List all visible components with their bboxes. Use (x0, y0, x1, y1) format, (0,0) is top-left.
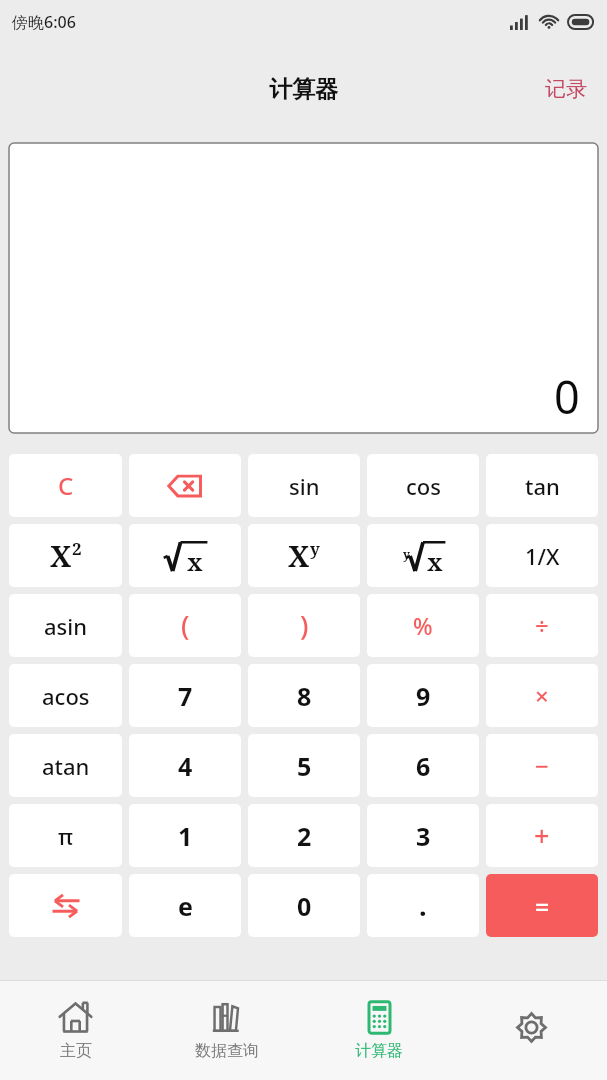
button[interactable]: asin (9, 594, 122, 657)
staticText: 记录 (545, 76, 587, 102)
staticText: % (413, 610, 433, 641)
staticText: x (427, 545, 443, 574)
staticText: acos (42, 681, 90, 711)
staticText: cos (406, 471, 441, 501)
staticText: X (288, 536, 310, 575)
staticText: + (534, 817, 550, 854)
button[interactable]: 0 (248, 874, 360, 937)
staticText: 3 (416, 819, 431, 853)
staticText: ÷ (535, 609, 549, 642)
staticText: 傍晚6:06 (12, 11, 76, 33)
button[interactable]: ) (248, 594, 360, 657)
button[interactable]: ( (129, 594, 241, 657)
staticText: 7 (178, 679, 193, 713)
staticText: = (535, 889, 550, 923)
staticText: 计算器 (355, 1041, 403, 1061)
button[interactable]: − (486, 734, 598, 797)
button[interactable]: cos (367, 454, 479, 517)
button[interactable]: e (129, 874, 241, 937)
staticText: asin (44, 611, 88, 641)
staticText: . (419, 887, 427, 924)
staticText: 2 (297, 819, 312, 853)
staticText: y (310, 537, 320, 560)
staticText: 5 (297, 749, 312, 783)
button[interactable]: = (486, 874, 598, 937)
button[interactable]: y-th root of x (367, 524, 479, 587)
button[interactable]: ÷ (486, 594, 598, 657)
button[interactable]: C (9, 454, 122, 517)
staticText: × (535, 679, 549, 712)
staticText: C (58, 469, 74, 502)
button[interactable]: Data query (151, 981, 303, 1080)
button[interactable]: Delete (129, 454, 241, 517)
button[interactable]: X squared (9, 524, 122, 587)
staticText: 0 (297, 889, 312, 923)
button[interactable]: 记录 (525, 64, 607, 114)
button[interactable]: Home (0, 981, 151, 1080)
staticText: 1/X (525, 541, 560, 571)
staticText: tan (525, 471, 560, 501)
staticText: 1 (178, 819, 193, 853)
staticText: X (50, 536, 72, 575)
button[interactable]: Swap (9, 874, 122, 937)
button[interactable]: 8 (248, 664, 360, 727)
staticText: 2 (72, 537, 82, 560)
staticText: ( (181, 607, 190, 644)
button[interactable]: 2 (248, 804, 360, 867)
staticText: ) (300, 607, 309, 644)
button[interactable]: + (486, 804, 598, 867)
button[interactable]: 4 (129, 734, 241, 797)
button[interactable]: π (9, 804, 122, 867)
staticText: 主页 (60, 1041, 92, 1061)
button[interactable]: atan (9, 734, 122, 797)
button[interactable]: 9 (367, 664, 479, 727)
staticText: π (58, 821, 73, 851)
staticText: 0 (554, 366, 580, 427)
staticText: y (403, 546, 410, 562)
button[interactable]: 1 (129, 804, 241, 867)
button[interactable]: 7 (129, 664, 241, 727)
staticText: 数据查询 (195, 1041, 259, 1061)
button[interactable]: . (367, 874, 479, 937)
button[interactable]: Square root of x (129, 524, 241, 587)
staticText: 6 (416, 749, 431, 783)
button[interactable]: acos (9, 664, 122, 727)
button[interactable]: 6 (367, 734, 479, 797)
button[interactable]: % (367, 594, 479, 657)
button[interactable]: Calculator (303, 981, 455, 1080)
button[interactable]: X to the power of y (248, 524, 360, 587)
staticText: e (178, 889, 193, 923)
staticText: 8 (297, 679, 312, 713)
staticText: sin (289, 471, 320, 501)
button[interactable]: sin (248, 454, 360, 517)
staticText: 9 (416, 679, 431, 713)
button[interactable]: Settings (455, 981, 607, 1080)
staticText: 计算器 (269, 75, 338, 104)
button[interactable]: × (486, 664, 598, 727)
button[interactable]: 1/X (486, 524, 598, 587)
staticText: atan (42, 751, 90, 781)
staticText: 4 (178, 749, 193, 783)
staticText: − (535, 749, 549, 782)
button[interactable]: 5 (248, 734, 360, 797)
staticText: x (187, 545, 203, 574)
button[interactable]: 3 (367, 804, 479, 867)
button[interactable]: tan (486, 454, 598, 517)
